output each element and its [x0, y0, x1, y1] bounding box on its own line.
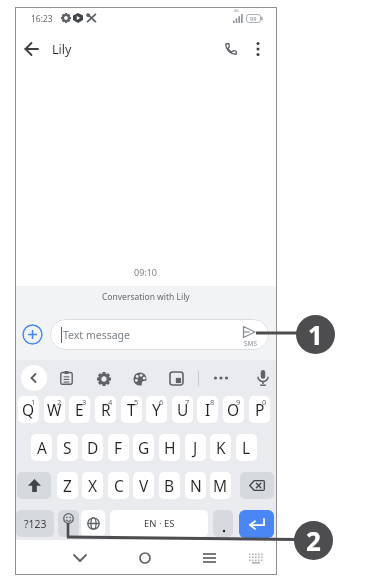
button[interactable]: ?123 — [16, 510, 54, 537]
staticText: Z — [63, 475, 72, 496]
staticText: SMS — [244, 339, 258, 348]
staticText: H — [164, 437, 176, 458]
staticText: 4G — [234, 8, 239, 13]
staticText: U — [177, 399, 189, 420]
button[interactable]: V — [133, 472, 154, 499]
button[interactable]: E — [69, 396, 90, 423]
staticText: 16:23 — [31, 13, 53, 25]
staticText: W — [47, 399, 62, 420]
staticText: Lily — [52, 41, 72, 58]
button[interactable]: O — [223, 396, 244, 423]
staticText: P — [255, 399, 265, 420]
staticText: 99 — [250, 15, 257, 22]
button[interactable]: X — [82, 472, 103, 499]
button[interactable] — [170, 372, 183, 385]
staticText: 8 — [210, 397, 215, 407]
button[interactable] — [213, 375, 230, 381]
button[interactable]: N — [185, 472, 206, 499]
button[interactable] — [223, 41, 239, 57]
button[interactable] — [251, 41, 265, 57]
button[interactable]: A — [31, 434, 52, 461]
button[interactable]: K — [210, 434, 231, 461]
staticText: 2 — [306, 523, 321, 558]
button[interactable]: G — [133, 434, 154, 461]
staticText: 2 — [57, 397, 62, 407]
staticText: L — [242, 437, 251, 458]
staticText: V — [139, 475, 149, 496]
button[interactable] — [97, 372, 111, 386]
staticText: 1 — [308, 317, 323, 352]
button[interactable]: B — [159, 472, 180, 499]
staticText: Q — [22, 399, 35, 420]
staticText: ?123 — [24, 517, 47, 531]
staticText: 5 — [134, 397, 139, 407]
button[interactable] — [256, 370, 270, 386]
button[interactable]: S — [57, 434, 78, 461]
staticText: 3 — [82, 397, 87, 407]
button[interactable] — [60, 371, 73, 385]
button[interactable]: Q — [18, 396, 39, 423]
button[interactable]: I — [197, 396, 218, 423]
button[interactable]: F — [108, 434, 129, 461]
button[interactable] — [133, 372, 147, 386]
button[interactable]: W — [44, 396, 65, 423]
button[interactable] — [22, 324, 43, 345]
button[interactable]: Text message — [50, 319, 269, 350]
button[interactable]: T — [121, 396, 142, 423]
button[interactable]: H — [159, 434, 180, 461]
staticText: 0 — [262, 397, 267, 407]
staticText: N — [190, 475, 202, 496]
button[interactable]: U — [172, 396, 193, 423]
button[interactable] — [241, 324, 265, 348]
button[interactable]: R — [95, 396, 116, 423]
staticText: 4 — [108, 397, 113, 407]
button[interactable]: M — [210, 472, 231, 499]
staticText: J — [193, 437, 198, 458]
button[interactable] — [240, 472, 274, 499]
button[interactable] — [21, 365, 47, 391]
staticText: F — [114, 437, 123, 458]
button[interactable]: C — [108, 472, 129, 499]
staticText: D — [87, 437, 99, 458]
staticText: 7 — [185, 397, 190, 407]
staticText: C — [114, 475, 124, 496]
staticText: Text message — [63, 328, 130, 342]
staticText: A — [37, 437, 47, 458]
staticText: Conversation with Lily — [102, 291, 190, 303]
button[interactable]: EN · ES — [110, 510, 208, 537]
button[interactable] — [17, 472, 51, 499]
button[interactable]: P — [249, 396, 270, 423]
button[interactable] — [239, 510, 274, 538]
button[interactable] — [213, 510, 233, 537]
staticText: B — [164, 475, 175, 496]
staticText: 1 — [31, 397, 36, 407]
button[interactable] — [202, 551, 217, 565]
staticText: EN · ES — [144, 517, 175, 530]
staticText: S — [63, 437, 72, 458]
button[interactable] — [137, 550, 153, 566]
staticText: X — [88, 475, 98, 496]
button[interactable] — [72, 551, 88, 565]
staticText: O — [227, 399, 240, 420]
staticText: I — [205, 399, 211, 420]
button[interactable]: Y — [146, 396, 167, 423]
button[interactable] — [24, 41, 40, 57]
staticText: E — [75, 399, 84, 420]
staticText: T — [127, 399, 136, 420]
staticText: 6 — [159, 397, 164, 407]
staticText: 09:10 — [134, 266, 158, 278]
staticText: G — [138, 437, 150, 458]
button[interactable] — [248, 552, 264, 564]
staticText: K — [216, 437, 226, 458]
button[interactable]: J — [185, 434, 206, 461]
button[interactable] — [58, 510, 79, 537]
button[interactable]: L — [236, 434, 257, 461]
staticText: 9 — [236, 397, 241, 407]
staticText: R — [101, 399, 111, 420]
staticText: Y — [152, 399, 161, 420]
button[interactable]: D — [82, 434, 103, 461]
button[interactable]: Z — [57, 472, 78, 499]
button[interactable] — [81, 510, 105, 537]
staticText: M — [213, 475, 228, 496]
